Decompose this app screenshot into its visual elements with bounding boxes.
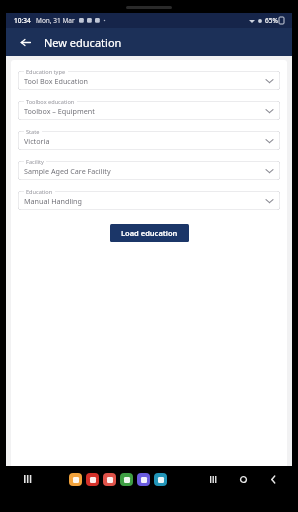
staticText: State — [26, 128, 40, 136]
staticText: 10:34 — [14, 16, 31, 25]
button[interactable]: Manual Handling — [18, 188, 280, 210]
button[interactable]: Back — [266, 472, 280, 486]
staticText: Load education — [121, 228, 178, 238]
staticText: 65% — [265, 16, 278, 25]
button[interactable]: Recents — [206, 472, 220, 486]
button[interactable]: Files — [69, 473, 82, 486]
staticText: Education type — [26, 68, 66, 76]
staticText: Toolbox education — [26, 98, 75, 106]
staticText: Tool Box Education — [24, 76, 89, 86]
staticText: Facility — [26, 158, 44, 166]
button[interactable]: Keep — [86, 473, 99, 486]
button[interactable]: Back — [16, 33, 34, 51]
staticText: Sample Aged Care Facility — [24, 166, 111, 176]
staticText: Mon, 31 Mar — [36, 16, 75, 25]
button[interactable]: Tool Box Education — [18, 68, 280, 90]
button[interactable]: Browser — [137, 473, 150, 486]
staticText: New education — [44, 35, 122, 50]
button[interactable]: Calculator — [120, 473, 133, 486]
button[interactable]: Calendar — [154, 473, 167, 486]
staticText: Education — [26, 188, 53, 196]
button[interactable]: Victoria — [18, 128, 280, 150]
button[interactable]: Home — [236, 472, 250, 486]
button[interactable]: Sample Aged Care Facility — [18, 158, 280, 180]
staticText: Victoria — [24, 136, 50, 146]
button[interactable]: Load education — [110, 224, 189, 242]
button[interactable]: All apps — [21, 472, 35, 486]
staticText: Manual Handling — [24, 196, 82, 206]
staticText: Toolbox – Equipment — [24, 106, 95, 116]
button[interactable]: Toolbox – Equipment — [18, 98, 280, 120]
button[interactable]: Contacts — [103, 473, 116, 486]
